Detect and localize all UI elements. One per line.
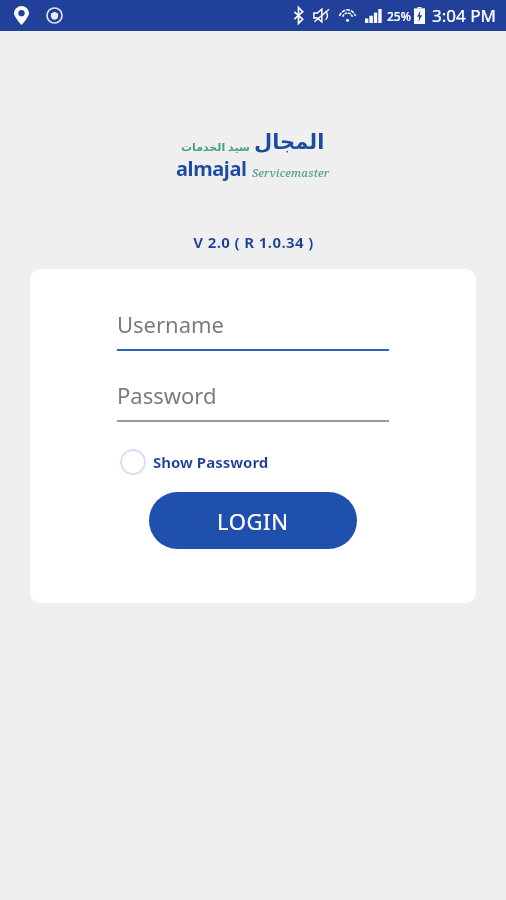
- button[interactable]: Show Password: [115, 444, 269, 480]
- staticText: 25%: [387, 8, 411, 24]
- staticText: Username: [117, 309, 225, 339]
- staticText: almajal: [176, 155, 247, 182]
- staticText: المجال: [254, 130, 325, 154]
- button[interactable]: Password: [117, 380, 389, 422]
- staticText: V 2.0 ( R 1.0.34 ): [193, 232, 314, 252]
- staticText: Show Password: [153, 452, 269, 472]
- staticText: سيد الخدمات: [181, 139, 250, 154]
- staticText: Servicemaster: [252, 165, 330, 180]
- staticText: 3:04 PM: [432, 4, 496, 27]
- staticText: LOGIN: [217, 506, 289, 536]
- staticText: Password: [117, 380, 217, 410]
- button[interactable]: LOGIN: [149, 492, 357, 549]
- button[interactable]: Username: [117, 309, 389, 351]
